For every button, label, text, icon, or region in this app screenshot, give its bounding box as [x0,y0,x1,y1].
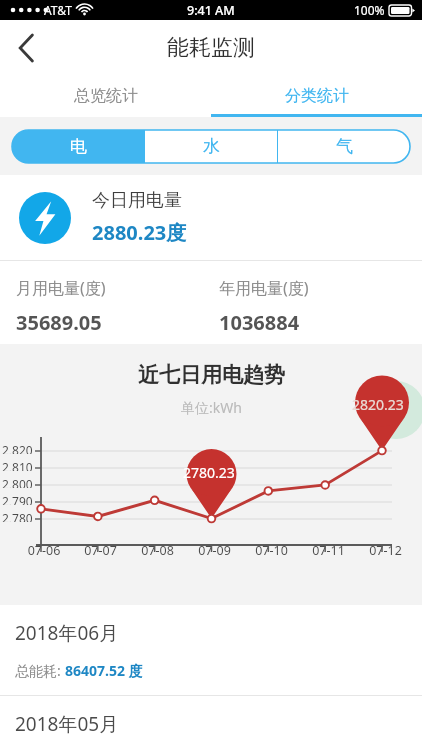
staticText: 近七日用电趋势 [138,362,285,388]
staticText: 86407.52 度 [65,661,143,680]
staticText: 100% [354,2,385,18]
staticText: 总能耗: [15,661,65,680]
button[interactable]: 总览统计 [0,75,211,117]
staticText: 2,800 [2,476,33,488]
button[interactable]: 2018年05月 [0,696,422,750]
staticText: 1036884 [219,309,300,336]
staticText: 2820.23 [352,395,404,414]
button[interactable]: 分类统计 [211,75,422,117]
staticText: 2,790 [2,493,33,505]
staticText: 07-11 [300,542,357,559]
staticText: 单位:kWh [181,398,242,417]
staticText: 07-10 [243,542,300,559]
staticText: 2,780 [2,510,33,522]
staticText: 总览统计 [74,86,138,106]
staticText: 今日用电量 [92,189,182,212]
staticText: 月用电量(度) [16,277,106,299]
staticText: AT&T [44,2,72,18]
staticText: 9:41 AM [187,2,235,19]
button[interactable]: 气 [278,130,410,163]
button[interactable]: Back [0,20,54,75]
staticText: 2880.23度 [92,219,187,246]
staticText: 35689.05 [16,309,102,336]
staticText: 年用电量(度) [219,277,309,299]
button[interactable]: 水 [145,130,277,163]
staticText: 电 [70,136,87,157]
staticText: 气 [336,136,353,157]
staticText: 2780.23 [183,463,235,482]
button[interactable]: 电 [12,130,144,163]
staticText: 07-08 [129,542,186,559]
button[interactable]: 2018年06月 [0,605,422,695]
staticText: 07-09 [186,542,243,559]
staticText: 2018年06月 [15,620,119,646]
staticText: 2,810 [2,459,33,471]
staticText: 2,820 [2,442,33,454]
staticText: 07-12 [357,542,414,559]
staticText: 水 [203,136,220,157]
staticText: 分类统计 [285,86,349,106]
staticText: 07-07 [72,542,129,559]
staticText: 07-06 [16,542,72,559]
button[interactable]: 今日用电量 [0,175,422,260]
staticText: 2018年05月 [15,711,119,735]
staticText: 能耗监测 [167,34,255,62]
